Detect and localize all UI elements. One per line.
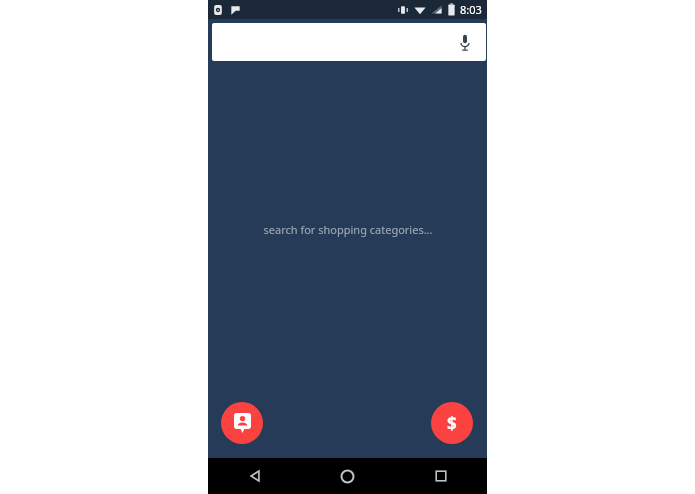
staticText: search for shopping categories... xyxy=(263,222,433,237)
button[interactable]: Prices xyxy=(431,402,473,444)
button[interactable]: Voice search xyxy=(454,31,476,53)
staticText: $ xyxy=(447,412,457,435)
button[interactable]: Account xyxy=(221,402,263,444)
button[interactable]: Home xyxy=(301,458,394,494)
button[interactable]: Back xyxy=(208,458,301,494)
button[interactable]: Voice search xyxy=(212,23,486,61)
staticText: 8:03 xyxy=(460,2,482,17)
button[interactable]: Recent apps xyxy=(394,458,487,494)
